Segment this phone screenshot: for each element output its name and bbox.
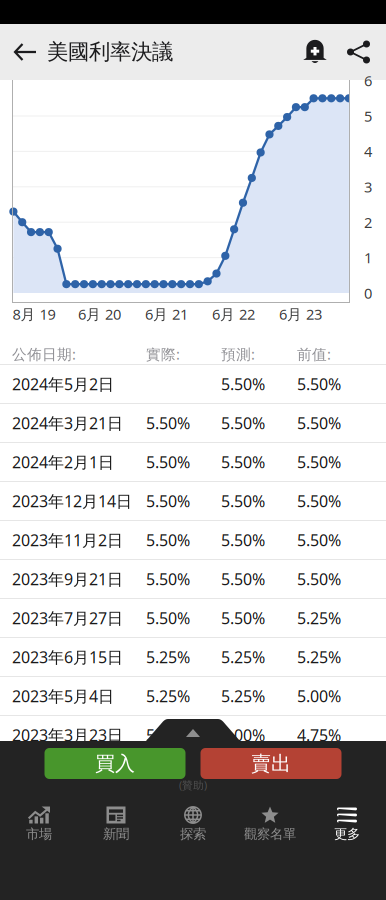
button[interactable]: Share xyxy=(338,24,386,80)
staticText: 5.50% xyxy=(221,451,265,473)
button[interactable]: 新聞 xyxy=(77,799,154,847)
button[interactable]: 賣出 xyxy=(200,748,341,779)
staticText: 更多 xyxy=(334,826,360,842)
staticText: 5.50% xyxy=(221,529,265,551)
button[interactable]: Create alert xyxy=(292,24,338,80)
button[interactable]: 買入 xyxy=(44,748,185,779)
staticText: 美國利率決議 xyxy=(47,39,173,65)
button[interactable]: 探索 xyxy=(154,799,231,847)
staticText: 6月 23 xyxy=(279,304,322,324)
staticText: 5.50% xyxy=(297,490,341,512)
staticText: 5.25% xyxy=(297,646,341,668)
staticText: 5.25% xyxy=(146,685,190,707)
staticText: 5.25% xyxy=(146,646,190,668)
button[interactable]: 2024年3月21日 xyxy=(0,403,386,442)
staticText: 5.50% xyxy=(221,607,265,629)
staticText: 6月 22 xyxy=(212,304,255,324)
staticText: 5.50% xyxy=(146,568,190,590)
staticText: 1 xyxy=(364,248,372,267)
staticText: 5.00% xyxy=(221,724,265,746)
staticText: 8月 19 xyxy=(12,304,55,324)
staticText: 5.50% xyxy=(297,568,341,590)
staticText: 探索 xyxy=(180,826,206,842)
staticText: 5.25% xyxy=(221,646,265,668)
staticText: 2 xyxy=(364,212,372,232)
staticText: 前值: xyxy=(297,344,331,364)
staticText: 0 xyxy=(364,283,372,303)
staticText: 4.75% xyxy=(297,724,341,746)
staticText: (贊助) xyxy=(179,778,207,792)
staticText: 5.00% xyxy=(146,724,190,746)
button[interactable]: 2023年12月14日 xyxy=(0,481,386,520)
staticText: 2024年5月2日 xyxy=(12,373,114,395)
button[interactable]: 觀察名單 xyxy=(231,799,308,847)
staticText: 5.25% xyxy=(297,607,341,629)
staticText: 公佈日期: xyxy=(12,344,76,364)
staticText: 5.50% xyxy=(146,451,190,473)
staticText: 2023年7月27日 xyxy=(12,607,123,629)
staticText: 5.50% xyxy=(146,412,190,434)
button[interactable]: Expand xyxy=(162,719,224,741)
staticText: 5.50% xyxy=(297,412,341,434)
staticText: 5.50% xyxy=(297,373,341,395)
button[interactable]: 2024年5月2日 xyxy=(0,364,386,403)
staticText: 5.50% xyxy=(221,568,265,590)
staticText: 2024年3月21日 xyxy=(12,412,123,434)
staticText: 市場 xyxy=(26,826,52,842)
staticText: 3 xyxy=(364,177,372,197)
button[interactable]: 2023年7月27日 xyxy=(0,598,386,637)
staticText: 2023年5月4日 xyxy=(12,685,114,707)
staticText: 6月 20 xyxy=(78,304,121,324)
staticText: 6 xyxy=(364,71,372,90)
staticText: 5.50% xyxy=(221,373,265,395)
button[interactable]: 2024年2月1日 xyxy=(0,442,386,481)
staticText: 賣出 xyxy=(251,751,291,776)
staticText: 6月 21 xyxy=(145,304,188,324)
staticText: 買入 xyxy=(95,751,135,776)
button[interactable]: 市場 xyxy=(0,799,77,847)
button[interactable]: 2023年11月2日 xyxy=(0,520,386,559)
staticText: 5.25% xyxy=(221,685,265,707)
staticText: 2023年12月14日 xyxy=(12,490,132,512)
staticText: 2023年6月15日 xyxy=(12,646,123,668)
staticText: 預測: xyxy=(221,344,255,364)
staticText: 5.50% xyxy=(297,451,341,473)
staticText: 實際: xyxy=(146,344,180,364)
staticText: 5.00% xyxy=(297,685,341,707)
staticText: 2023年11月2日 xyxy=(12,529,123,551)
staticText: 2023年3月23日 xyxy=(12,724,123,746)
staticText: 5.50% xyxy=(146,607,190,629)
button[interactable]: 美國利率決議 xyxy=(47,24,173,80)
button[interactable]: Back xyxy=(0,24,47,80)
staticText: 5.50% xyxy=(146,529,190,551)
staticText: 4 xyxy=(364,142,372,161)
staticText: 觀察名單 xyxy=(244,826,296,842)
staticText: 5 xyxy=(364,106,372,126)
button[interactable]: 2023年9月21日 xyxy=(0,559,386,598)
button[interactable]: 更多 xyxy=(308,799,385,847)
button[interactable]: 2023年3月23日 xyxy=(0,715,386,754)
staticText: 5.50% xyxy=(146,490,190,512)
staticText: 5.50% xyxy=(221,412,265,434)
staticText: 2024年2月1日 xyxy=(12,451,114,473)
staticText: 5.50% xyxy=(297,529,341,551)
staticText: 5.50% xyxy=(221,490,265,512)
staticText: 2023年9月21日 xyxy=(12,568,123,590)
staticText: 新聞 xyxy=(103,826,129,842)
button[interactable]: 2023年6月15日 xyxy=(0,637,386,676)
button[interactable]: 2023年5月4日 xyxy=(0,676,386,715)
